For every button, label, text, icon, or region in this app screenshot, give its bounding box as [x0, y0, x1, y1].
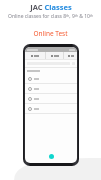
button[interactable]: Home	[49, 154, 54, 159]
button[interactable]	[25, 94, 77, 103]
button[interactable]	[25, 74, 77, 83]
button[interactable]	[64, 52, 77, 59]
button[interactable]	[25, 52, 45, 59]
button[interactable]	[25, 104, 77, 113]
button[interactable]	[25, 84, 77, 93]
staticText: JAC Classes	[30, 2, 72, 12]
staticText: Online classes for class 8th, 9th & 10th	[2, 13, 99, 20]
button[interactable]	[46, 52, 63, 59]
button[interactable]: Online Test	[33, 29, 68, 38]
